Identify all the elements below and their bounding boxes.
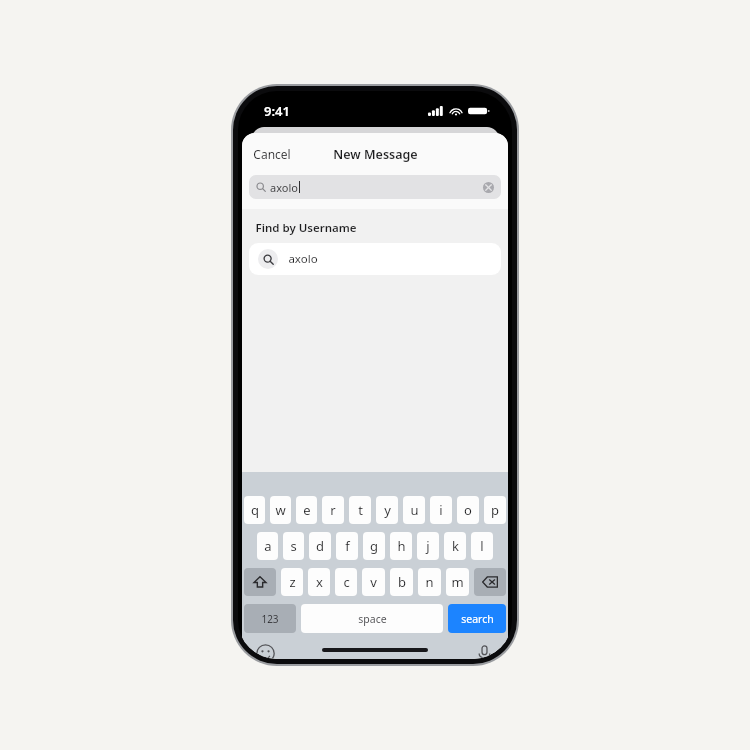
staticText: m bbox=[451, 573, 464, 591]
staticText: y bbox=[384, 501, 391, 519]
button[interactable]: i bbox=[430, 496, 452, 524]
staticText: n bbox=[425, 573, 434, 591]
staticText: p bbox=[491, 501, 499, 519]
button[interactable]: g bbox=[363, 532, 385, 560]
staticText: x bbox=[316, 573, 323, 591]
button[interactable]: y bbox=[376, 496, 398, 524]
staticText: Cancel bbox=[253, 146, 291, 162]
button[interactable]: n bbox=[418, 568, 441, 596]
button[interactable]: e bbox=[296, 496, 317, 524]
button[interactable]: Clear text bbox=[483, 182, 494, 193]
staticText: space bbox=[358, 612, 387, 626]
staticText: w bbox=[275, 501, 286, 519]
button[interactable]: a bbox=[257, 532, 278, 560]
staticText: k bbox=[452, 537, 459, 555]
staticText: d bbox=[316, 537, 324, 555]
staticText: s bbox=[290, 537, 297, 555]
staticText: h bbox=[397, 537, 406, 555]
staticText: z bbox=[289, 573, 296, 591]
staticText: q bbox=[251, 501, 259, 519]
button[interactable]: x bbox=[308, 568, 330, 596]
staticText: axolo bbox=[288, 251, 318, 267]
staticText: c bbox=[343, 573, 350, 591]
button[interactable]: Dictation bbox=[475, 644, 494, 659]
button[interactable]: Shift bbox=[244, 568, 276, 596]
staticText: search bbox=[461, 612, 494, 626]
staticText: f bbox=[345, 537, 350, 555]
staticText: e bbox=[303, 501, 311, 519]
button[interactable]: axolo bbox=[249, 175, 501, 199]
button[interactable]: q bbox=[244, 496, 265, 524]
button[interactable]: Emoji bbox=[256, 644, 275, 659]
button[interactable]: k bbox=[444, 532, 466, 560]
staticText: 9:41 bbox=[264, 102, 290, 120]
staticText: a bbox=[264, 537, 272, 555]
button[interactable]: t bbox=[349, 496, 371, 524]
staticText: i bbox=[439, 501, 443, 519]
button[interactable]: d bbox=[309, 532, 331, 560]
button[interactable]: v bbox=[362, 568, 385, 596]
button[interactable]: j bbox=[417, 532, 439, 560]
staticText: j bbox=[426, 537, 430, 555]
staticText: Find by Username bbox=[255, 220, 357, 236]
staticText: o bbox=[464, 501, 472, 519]
button[interactable]: h bbox=[390, 532, 412, 560]
button[interactable]: Backspace bbox=[474, 568, 506, 596]
button[interactable]: search bbox=[448, 604, 506, 633]
button[interactable]: p bbox=[484, 496, 506, 524]
button[interactable]: s bbox=[283, 532, 304, 560]
staticText: 123 bbox=[261, 612, 279, 626]
button[interactable]: 123 bbox=[244, 604, 296, 633]
staticText: u bbox=[410, 501, 419, 519]
button[interactable]: axolo bbox=[249, 243, 501, 275]
button[interactable]: z bbox=[281, 568, 303, 596]
button[interactable]: u bbox=[403, 496, 425, 524]
button[interactable]: c bbox=[335, 568, 357, 596]
staticText: v bbox=[370, 573, 377, 591]
button[interactable]: o bbox=[457, 496, 479, 524]
staticText: New Message bbox=[333, 146, 418, 163]
staticText: axolo bbox=[270, 180, 298, 195]
staticText: g bbox=[370, 537, 378, 555]
button[interactable]: l bbox=[471, 532, 493, 560]
button[interactable]: Cancel bbox=[242, 137, 302, 171]
button[interactable]: f bbox=[336, 532, 358, 560]
staticText: t bbox=[358, 501, 363, 519]
button[interactable]: w bbox=[270, 496, 291, 524]
button[interactable]: r bbox=[322, 496, 344, 524]
staticText: r bbox=[330, 501, 336, 519]
button[interactable]: m bbox=[446, 568, 469, 596]
staticText: l bbox=[480, 537, 484, 555]
button[interactable]: space bbox=[301, 604, 443, 633]
button[interactable]: b bbox=[390, 568, 413, 596]
staticText: b bbox=[398, 573, 406, 591]
